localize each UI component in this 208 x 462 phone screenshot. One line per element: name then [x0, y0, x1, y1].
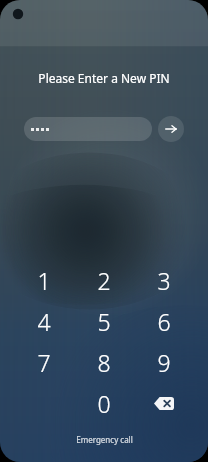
- button[interactable]: 6: [137, 301, 191, 341]
- button[interactable]: Delete: [137, 383, 191, 423]
- staticText: Please Enter a New PIN: [0, 70, 208, 86]
- button[interactable]: 2: [77, 260, 131, 300]
- staticText: 1: [37, 265, 51, 296]
- button[interactable]: 4: [17, 301, 71, 341]
- button[interactable]: 5: [77, 301, 131, 341]
- button[interactable]: 1: [17, 260, 71, 300]
- staticText: 0: [97, 388, 111, 419]
- button[interactable]: 8: [77, 342, 131, 382]
- button[interactable]: [24, 117, 152, 141]
- staticText: 9: [157, 347, 171, 378]
- staticText: 4: [37, 306, 51, 337]
- staticText: 3: [157, 265, 171, 296]
- staticText: 7: [37, 347, 51, 378]
- staticText: 2: [97, 265, 111, 296]
- button[interactable]: 7: [17, 342, 71, 382]
- button[interactable]: Emergency call: [68, 432, 141, 447]
- button[interactable]: 0: [77, 383, 131, 423]
- button[interactable]: 9: [137, 342, 191, 382]
- staticText: 6: [157, 306, 171, 337]
- staticText: 8: [97, 347, 111, 378]
- button[interactable]: Submit PIN: [158, 116, 184, 142]
- button[interactable]: 3: [137, 260, 191, 300]
- staticText: Emergency call: [76, 434, 133, 445]
- staticText: 5: [97, 306, 111, 337]
